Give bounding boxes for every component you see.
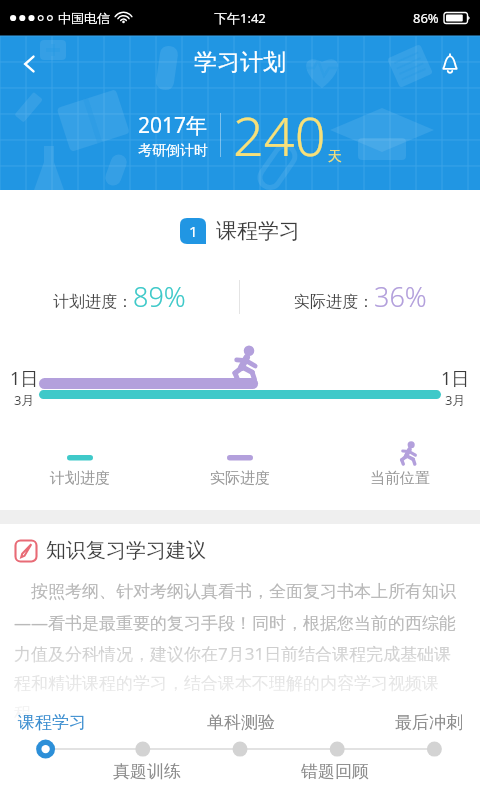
staticText: 考研倒计时	[138, 142, 208, 160]
button[interactable]: 最后冲刺	[382, 704, 476, 800]
staticText: 最后冲刺	[395, 712, 463, 733]
staticText: 实际进度：	[294, 292, 374, 312]
staticText: 按照考纲、针对考纲认真看书，全面复习书本上所有知识——看书是最重要的复习手段！同…	[14, 579, 466, 724]
staticText: 240	[233, 98, 326, 172]
staticText: 错题回顾	[301, 761, 369, 782]
staticText: 课程学习	[216, 218, 300, 244]
button[interactable]: 实际进度	[210, 443, 270, 488]
staticText: 1日	[10, 366, 39, 391]
staticText: 计划进度：	[53, 292, 133, 312]
staticText: 课程学习	[18, 712, 86, 733]
staticText: 天	[328, 148, 342, 166]
staticText: 中国电信	[58, 10, 110, 26]
staticText: 36%	[374, 278, 427, 315]
staticText: 学习计划	[194, 48, 286, 77]
staticText: 单科测验	[207, 712, 275, 733]
staticText: 实际进度	[210, 469, 270, 488]
staticText: 1	[189, 221, 198, 241]
staticText: 真题训练	[113, 761, 181, 782]
button[interactable]: 计划进度	[50, 443, 110, 488]
staticText: 89%	[133, 278, 186, 315]
staticText: 知识复习学习建议	[46, 538, 206, 563]
button[interactable]: Back	[6, 40, 54, 88]
button[interactable]: 当前位置	[370, 443, 430, 488]
button[interactable]: 课程学习	[4, 704, 99, 800]
button[interactable]: Notifications	[426, 40, 474, 88]
button[interactable]: 真题训练	[99, 704, 194, 800]
button[interactable]: 单科测验	[194, 704, 288, 800]
staticText: 计划进度	[50, 469, 110, 488]
staticText: 1日	[441, 366, 470, 391]
button[interactable]: 错题回顾	[288, 704, 382, 800]
staticText: 3月	[14, 391, 35, 409]
staticText: 3月	[445, 391, 466, 409]
staticText: 86%	[413, 9, 439, 27]
staticText: 下午1:42	[214, 9, 266, 27]
staticText: 当前位置	[370, 469, 430, 488]
staticText: 2017年	[138, 111, 208, 140]
